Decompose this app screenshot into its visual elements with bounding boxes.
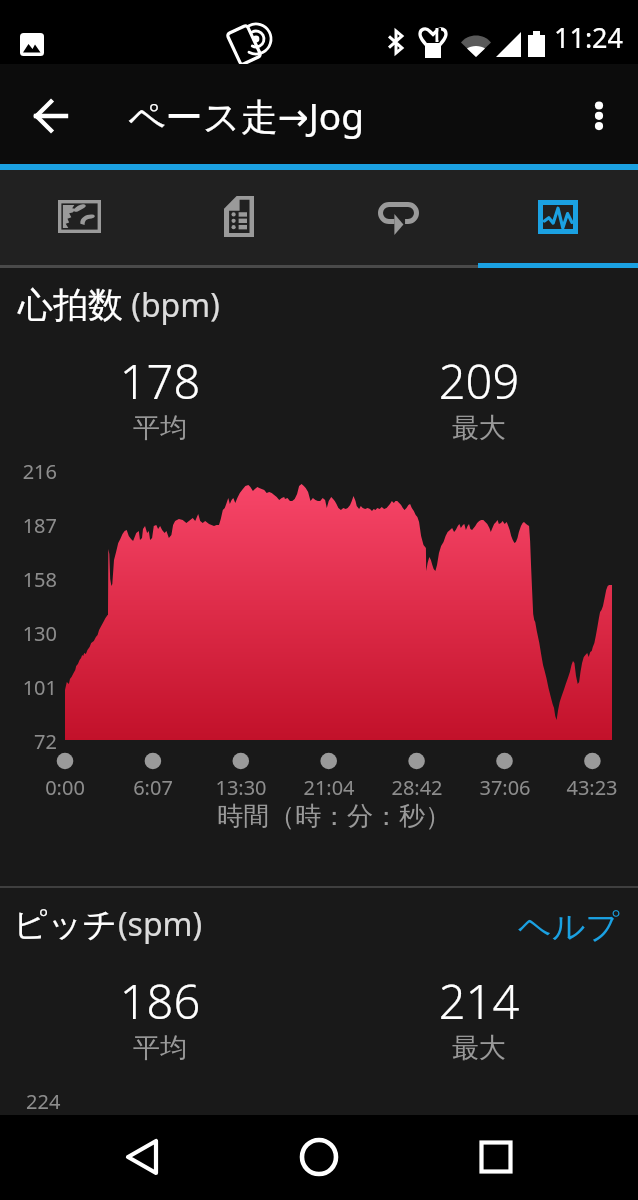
staticText: 0:00 bbox=[0, 774, 384, 801]
staticText: ピッチ bbox=[13, 903, 118, 946]
staticText: 21:04 bbox=[10, 774, 638, 801]
button[interactable]: More options bbox=[550, 64, 638, 162]
staticText: 6:07 bbox=[0, 774, 472, 801]
staticText: 101 bbox=[0, 674, 57, 701]
button[interactable]: Details tab bbox=[159, 170, 318, 268]
button[interactable]: Back bbox=[92, 1115, 192, 1200]
staticText: (spm) bbox=[118, 902, 203, 946]
staticText: 28:42 bbox=[98, 774, 638, 801]
button[interactable]: Home bbox=[269, 1115, 369, 1200]
button[interactable]: Laps tab bbox=[318, 170, 478, 268]
button[interactable]: Back bbox=[2, 64, 100, 162]
staticText: 平均 bbox=[50, 411, 270, 445]
staticText: 心拍数 bbox=[18, 283, 123, 327]
button[interactable]: ヘルプ bbox=[514, 902, 624, 952]
button[interactable]: Map tab bbox=[0, 170, 159, 268]
button[interactable]: Charts tab bbox=[478, 170, 638, 268]
staticText: 37:06 bbox=[186, 774, 638, 801]
staticText: 178 bbox=[50, 349, 270, 413]
staticText: 216 bbox=[0, 458, 57, 485]
staticText: 43:23 bbox=[273, 774, 638, 801]
staticText: 224 bbox=[26, 1088, 61, 1115]
button[interactable]: Recent apps bbox=[446, 1115, 546, 1200]
staticText: 130 bbox=[0, 620, 57, 647]
staticText: 最大 bbox=[369, 1031, 589, 1065]
staticText: ヘルプ bbox=[518, 906, 620, 948]
staticText: 時間（時：分：秒） bbox=[15, 800, 638, 833]
staticText: (bpm) bbox=[123, 283, 220, 327]
staticText: 186 bbox=[50, 969, 270, 1033]
staticText: 72 bbox=[0, 728, 57, 755]
staticText: 平均 bbox=[50, 1031, 270, 1065]
staticText: 最大 bbox=[369, 411, 589, 445]
staticText: 11:24 bbox=[554, 19, 624, 56]
staticText: 13:30 bbox=[0, 774, 560, 801]
staticText: ペース走→Jog bbox=[128, 90, 364, 141]
staticText: 209 bbox=[369, 349, 589, 413]
staticText: 158 bbox=[0, 566, 57, 593]
staticText: 214 bbox=[369, 969, 589, 1033]
staticText: 187 bbox=[0, 512, 57, 539]
